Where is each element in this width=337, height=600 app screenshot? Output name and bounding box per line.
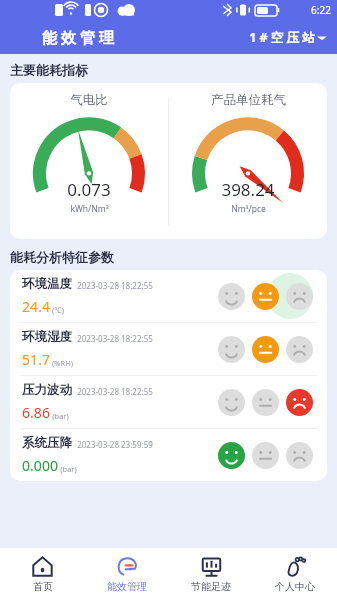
button[interactable]: 能效管理: [85, 548, 169, 600]
staticText: 能效管理: [107, 580, 147, 593]
staticText: 398.24: [221, 178, 275, 201]
staticText: kWh/Nm³: [70, 203, 109, 215]
button[interactable]: Bad: [286, 336, 313, 363]
staticText: 主要能耗指标: [10, 62, 88, 78]
button[interactable]: Neutral: [252, 336, 279, 363]
staticText: 2023-03-28 18:22:55: [77, 386, 153, 397]
button[interactable]: 节能足迹: [169, 548, 253, 600]
staticText: 压力波动: [22, 382, 72, 398]
button[interactable]: Good: [218, 389, 245, 416]
button[interactable]: Good: [218, 336, 245, 363]
button[interactable]: Good: [218, 442, 245, 469]
staticText: 51.7: [22, 350, 50, 369]
button[interactable]: Bad: [286, 389, 313, 416]
button[interactable]: 个人中心: [253, 548, 337, 600]
staticText: 产品单位耗气: [211, 92, 286, 108]
staticText: (bar): [52, 411, 69, 421]
staticText: 节能足迹: [191, 580, 231, 593]
staticText: 首页: [33, 580, 53, 593]
button[interactable]: 系统压降: [10, 429, 327, 481]
staticText: 能 效 管 理: [42, 27, 114, 47]
staticText: 2023-03-28 23:59:59: [77, 439, 153, 450]
staticText: 环境温度: [22, 276, 72, 292]
button[interactable]: Neutral: [252, 442, 279, 469]
button[interactable]: Bad: [286, 442, 313, 469]
staticText: 系统压降: [22, 435, 72, 451]
staticText: 个人中心: [275, 580, 315, 593]
staticText: (bar): [60, 464, 77, 474]
button[interactable]: 环境温度: [10, 270, 327, 322]
staticText: 能耗分析特征参数: [10, 249, 114, 265]
staticText: 1 # 空 压 站: [249, 29, 315, 46]
staticText: 0.000: [22, 456, 58, 475]
staticText: (℃): [52, 305, 64, 315]
staticText: 2023-03-28 18:22:55: [77, 280, 153, 291]
staticText: 2023-03-28 18:22:55: [77, 333, 153, 344]
staticText: 6:22: [311, 3, 331, 17]
staticText: 24.4: [22, 297, 50, 316]
button[interactable]: Good: [218, 283, 245, 310]
button[interactable]: 压力波动: [10, 376, 327, 428]
staticText: (%RH): [52, 358, 73, 368]
button[interactable]: 环境湿度: [10, 323, 327, 375]
button[interactable]: 首页: [0, 548, 85, 600]
button[interactable]: Neutral: [252, 283, 279, 310]
staticText: 6.86: [22, 403, 50, 422]
button[interactable]: Neutral: [252, 389, 279, 416]
button[interactable]: 1 # 空 压 站: [247, 25, 329, 50]
staticText: 0.073: [67, 178, 111, 201]
staticText: 环境湿度: [22, 329, 72, 345]
staticText: Nm³/pce: [231, 203, 266, 215]
button[interactable]: Bad: [286, 283, 313, 310]
staticText: 气电比: [70, 92, 108, 108]
